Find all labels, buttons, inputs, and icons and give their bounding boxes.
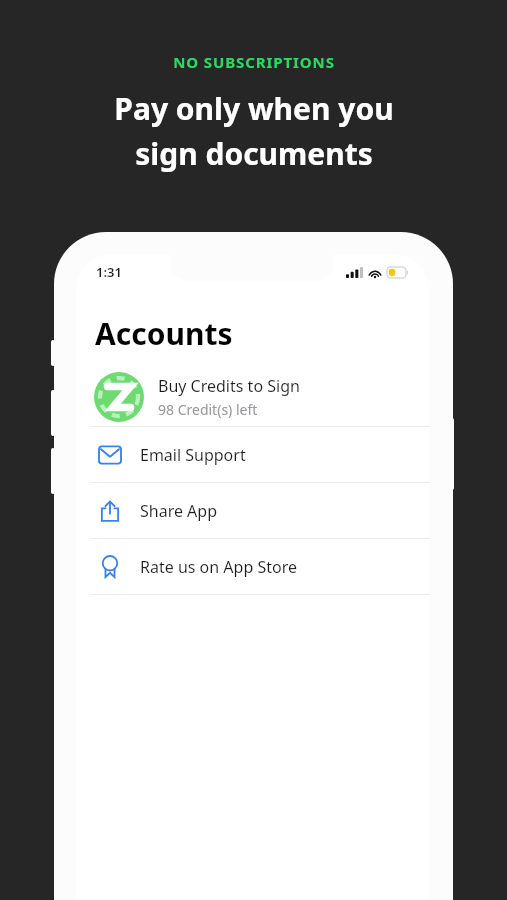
staticText: Share App — [140, 500, 218, 522]
button[interactable]: Share App — [76, 483, 429, 538]
staticText: 1:31 — [96, 263, 122, 281]
other: Share App — [99, 500, 121, 522]
other: Credits — [94, 372, 144, 422]
staticText: Email Support — [140, 444, 246, 466]
button[interactable]: Credits — [76, 368, 429, 426]
other: Rate us on App Store — [99, 556, 121, 578]
other: Email Support — [99, 444, 121, 466]
staticText: NO SUBSCRIPTIONS — [173, 52, 335, 72]
staticText: Pay only when you — [114, 88, 394, 129]
staticText: Accounts — [95, 313, 233, 354]
button[interactable]: Email Support — [76, 427, 429, 482]
button[interactable]: Rate us on App Store — [76, 539, 429, 594]
staticText: Rate us on App Store — [140, 556, 297, 578]
staticText: sign documents — [135, 133, 373, 174]
staticText: Buy Credits to Sign — [158, 375, 300, 397]
staticText: 98 Credit(s) left — [158, 400, 258, 419]
